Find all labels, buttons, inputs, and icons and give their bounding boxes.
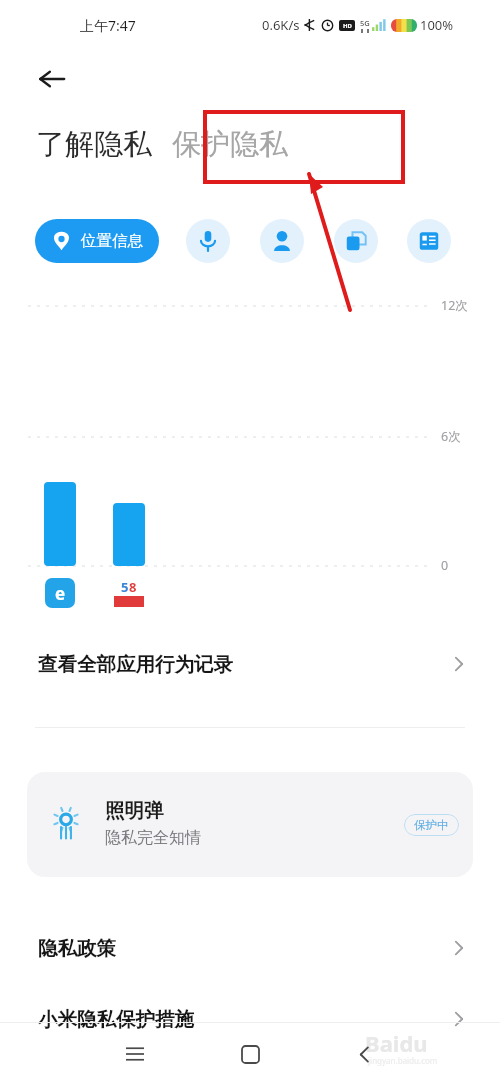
button[interactable]: Records bbox=[407, 219, 451, 263]
staticText: 5 bbox=[121, 578, 129, 596]
staticText: 照明弹 bbox=[105, 798, 164, 823]
staticText: 位置信息 bbox=[81, 231, 143, 251]
staticText: 隐私完全知情 bbox=[105, 828, 201, 848]
staticText: 12次 bbox=[441, 297, 468, 314]
staticText: Baidu bbox=[365, 1028, 428, 1058]
staticText: 8 bbox=[129, 578, 137, 596]
button[interactable]: 保护隐私 bbox=[172, 120, 288, 169]
staticText: 了解隐私 bbox=[36, 126, 152, 163]
staticText: 上午7:47 bbox=[80, 16, 136, 35]
staticText: e bbox=[55, 582, 66, 605]
staticText: 6次 bbox=[441, 428, 461, 445]
button[interactable]: Files bbox=[334, 219, 378, 263]
staticText: 保护隐私 bbox=[172, 126, 288, 163]
staticText: HD bbox=[343, 22, 352, 30]
button[interactable]: 隐私政策 bbox=[0, 917, 500, 979]
staticText: 0 bbox=[441, 557, 449, 574]
button[interactable]: Menu bbox=[112, 1031, 158, 1077]
staticText: 小米隐私保护措施 bbox=[38, 1007, 194, 1032]
staticText: 隐私政策 bbox=[38, 936, 116, 961]
button[interactable]: 位置信息 bbox=[35, 219, 159, 263]
button[interactable]: Home bbox=[227, 1031, 273, 1077]
button[interactable]: 了解隐私 bbox=[36, 120, 152, 169]
button[interactable]: 保护中 bbox=[404, 814, 459, 836]
staticText: 100% bbox=[420, 16, 454, 34]
staticText: 保护中 bbox=[414, 818, 449, 832]
button[interactable]: Microphone bbox=[186, 219, 230, 263]
button[interactable]: 查看全部应用行为记录 bbox=[0, 633, 500, 695]
staticText: 查看全部应用行为记录 bbox=[38, 652, 233, 677]
button[interactable]: 小米隐私保护措施 bbox=[0, 988, 500, 1050]
button[interactable]: Contacts bbox=[260, 219, 304, 263]
button[interactable]: Back bbox=[341, 1031, 387, 1077]
staticText: jingyan.baidu.com bbox=[368, 1055, 438, 1066]
staticText: 5G bbox=[360, 18, 370, 28]
staticText: 0.6K/s bbox=[262, 16, 300, 34]
button[interactable]: Back bbox=[30, 57, 74, 101]
button[interactable]: 照明弹 bbox=[27, 772, 473, 877]
